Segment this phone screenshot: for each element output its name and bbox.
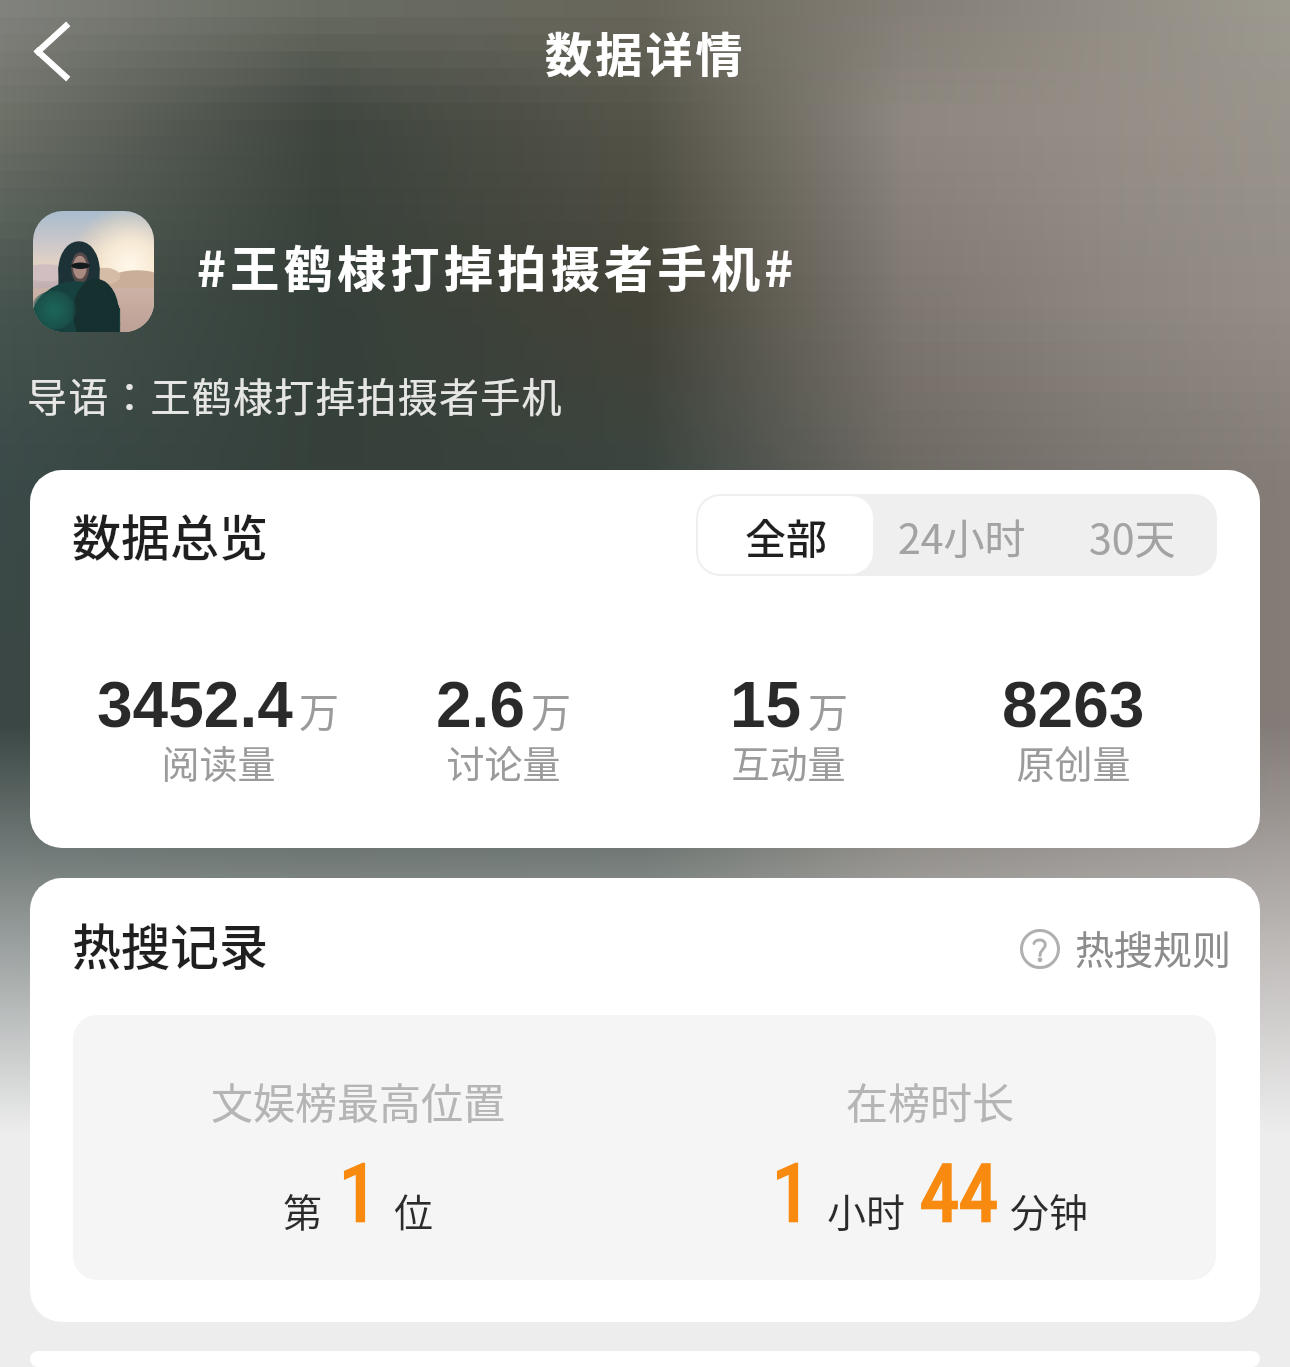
staticText: 2.6 (436, 669, 525, 741)
staticText: 15 (730, 669, 802, 741)
staticText: 3452.4 (97, 669, 293, 741)
button[interactable]: 30天 (1048, 494, 1217, 576)
staticText: 万 (531, 681, 571, 739)
button[interactable]: 24小时 (875, 494, 1048, 576)
staticText: 位 (394, 1182, 434, 1238)
staticText: 1 (772, 1148, 811, 1241)
staticText: 数据详情 (545, 17, 746, 85)
staticText: 热搜规则 (1075, 919, 1232, 975)
staticText: 24小时 (898, 506, 1026, 565)
staticText: #王鹤棣打掉拍摄者手机# (197, 230, 798, 301)
staticText: 数据总览 (72, 499, 269, 570)
staticText: 全部 (745, 506, 827, 565)
staticText: 讨论量 (446, 734, 561, 789)
button[interactable]: Back (0, 0, 104, 104)
staticText: 1 (339, 1148, 378, 1241)
staticText: 原创量 (1016, 734, 1131, 789)
staticText: 万 (808, 681, 848, 739)
staticText: 分钟 (1010, 1182, 1089, 1238)
staticText: 阅读量 (161, 734, 276, 789)
staticText: 导语：王鹤棣打掉拍摄者手机 (27, 366, 563, 424)
staticText: 小时 (827, 1182, 906, 1238)
staticText: 万 (299, 681, 339, 739)
staticText: 第 (283, 1182, 323, 1238)
staticText: 文娱榜最高位置 (211, 1070, 506, 1131)
staticText: 8263 (1002, 669, 1145, 741)
staticText: 44 (920, 1148, 998, 1241)
staticText: 在榜时长 (846, 1070, 1015, 1131)
staticText: 30天 (1089, 506, 1176, 565)
button[interactable]: Topic avatar (33, 211, 154, 332)
staticText: 互动量 (731, 734, 846, 789)
staticText: 热搜记录 (72, 908, 269, 979)
button[interactable]: 热搜规则 (1020, 921, 1232, 977)
button[interactable]: 全部 (698, 496, 873, 574)
